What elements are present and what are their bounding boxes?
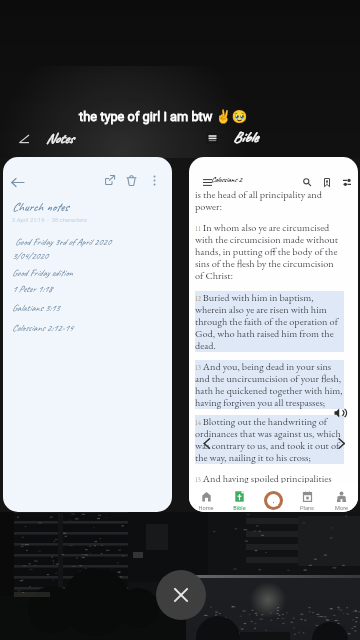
staticText: Plans (300, 505, 314, 512)
staticText: Good Friday 3rd of April 2020 (15, 236, 111, 248)
button[interactable]: Back (3, 157, 172, 512)
staticText: 13 And you, being dead in your sins and … (195, 360, 344, 409)
staticText: Good Friday edition (12, 267, 73, 279)
button[interactable]: Next chapter (331, 433, 351, 453)
staticText: 3 April 21:19 · 38 characters (12, 217, 87, 224)
button[interactable]: Delete (121, 170, 141, 190)
button[interactable]: Menu (189, 157, 358, 512)
staticText: 1 Peter 1:18 (12, 283, 53, 295)
staticText: 12 Buried with him in baptism, wherein a… (195, 291, 344, 352)
staticText: 14 Blotting out the handwriting of ordin… (195, 415, 344, 464)
button[interactable]: More options (144, 170, 164, 190)
staticText: Home (198, 505, 214, 512)
button[interactable]: Bible (222, 483, 256, 512)
button[interactable]: Quiz (256, 483, 290, 512)
button[interactable]: Share (100, 170, 120, 190)
staticText: is the head of all principality and powe… (195, 188, 344, 213)
button[interactable]: Bookmarks (319, 174, 335, 190)
button[interactable]: Search (299, 174, 315, 190)
staticText: Colossians 2 (211, 175, 242, 184)
button[interactable]: More (324, 483, 358, 512)
button[interactable]: Plans (290, 483, 324, 512)
staticText: Colossians 2:12-14 (12, 322, 73, 334)
button[interactable]: Home (189, 483, 222, 512)
staticText: 15 And having spoiled principalities (195, 472, 332, 485)
staticText: 3/04/2020 (12, 250, 48, 262)
button[interactable]: Back (8, 173, 27, 192)
button[interactable]: Previous chapter (197, 433, 217, 453)
button[interactable]: Close (156, 570, 206, 620)
staticText: Bible (233, 505, 246, 512)
staticText: 11 In whom also ye are circumcised with … (195, 221, 344, 282)
staticText: the type of girl I am btw ✌️🥹 (79, 109, 248, 124)
staticText: More (335, 505, 348, 512)
staticText: Bible (233, 128, 258, 147)
staticText: Church notes (12, 199, 68, 214)
staticText: Galatians 3:13 (12, 302, 60, 314)
button[interactable]: Read aloud (332, 405, 348, 421)
button[interactable]: Menu (199, 174, 215, 190)
button[interactable]: Display settings (339, 174, 355, 190)
staticText: Notes (46, 130, 74, 148)
